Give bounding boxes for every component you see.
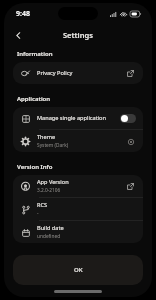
staticText: Settings: [63, 30, 93, 40]
staticText: -: [37, 210, 39, 217]
staticText: 3.2.0-2106: [37, 187, 61, 194]
staticText: Privacy Policy: [37, 69, 73, 77]
button[interactable]: Select theme: [125, 136, 136, 147]
button[interactable]: Manage single application toggle: [120, 114, 136, 123]
button[interactable]: Open link: [124, 180, 136, 192]
staticText: Manage single application: [37, 114, 106, 122]
staticText: 9:48: [16, 9, 30, 19]
button[interactable]: RCS: [13, 198, 143, 220]
staticText: Build date: [37, 224, 64, 232]
staticText: System (Dark): [37, 142, 69, 149]
staticText: Version Info: [17, 163, 53, 171]
button[interactable]: Build date: [13, 221, 143, 243]
button[interactable]: OK: [13, 255, 143, 285]
staticText: Theme: [37, 133, 56, 141]
staticText: OK: [74, 266, 83, 274]
button[interactable]: Theme: [13, 130, 143, 152]
button[interactable]: Open link: [124, 67, 136, 79]
button[interactable]: Back: [10, 27, 26, 43]
button[interactable]: Manage single application: [13, 107, 143, 129]
staticText: Application: [17, 95, 51, 103]
staticText: RCS: [37, 201, 48, 209]
button[interactable]: App Version: [13, 175, 143, 197]
staticText: App Version: [37, 178, 69, 186]
button[interactable]: Privacy Policy: [13, 62, 143, 84]
staticText: undefined: [37, 233, 61, 240]
staticText: Information: [17, 50, 53, 58]
